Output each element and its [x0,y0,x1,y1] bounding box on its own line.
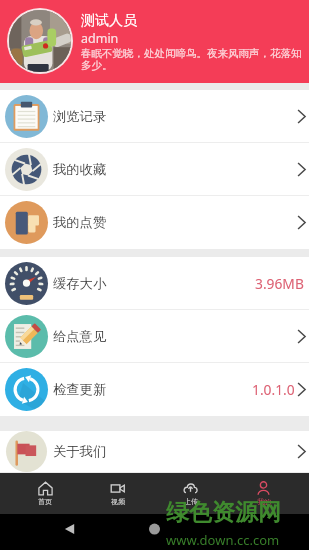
staticText: 我的 [257,497,271,506]
staticText: 缓存大小 [53,275,107,292]
staticText: www.down.cc.com [166,531,280,549]
button[interactable]: 我的 [227,473,300,514]
staticText: 春眠不觉晓，处处闻啼鸟。夜来风雨声，花落知多少。 [81,47,305,72]
staticText: 首页 [38,497,52,506]
button[interactable]: 浏览记录 [0,90,309,143]
button[interactable]: 我的收藏 [0,143,309,196]
staticText: 浏览记录 [53,108,107,125]
button[interactable]: 视频 [81,473,154,514]
staticText: 上传 [184,497,198,506]
staticText: admin [81,30,119,47]
staticText: 3.96MB [255,274,304,293]
staticText: 1.0.1.0 [252,380,295,399]
button[interactable]: 首页 [9,473,81,514]
button[interactable]: 缓存大小 [0,257,309,310]
staticText: 绿色资源网 [166,498,281,527]
staticText: 检查更新 [53,381,107,398]
button[interactable]: 我的点赞 [0,196,309,249]
staticText: 视频 [111,497,125,506]
staticText: 测试人员 [81,12,137,30]
staticText: 给点意见 [53,328,107,345]
staticText: 关于我们 [53,443,107,460]
button[interactable]: 检查更新 [0,363,309,416]
staticText: 我的点赞 [53,214,107,231]
staticText: 我的收藏 [53,161,107,178]
button[interactable]: 上传 [154,473,227,514]
button[interactable]: 给点意见 [0,310,309,363]
button[interactable]: 关于我们 [0,431,309,472]
